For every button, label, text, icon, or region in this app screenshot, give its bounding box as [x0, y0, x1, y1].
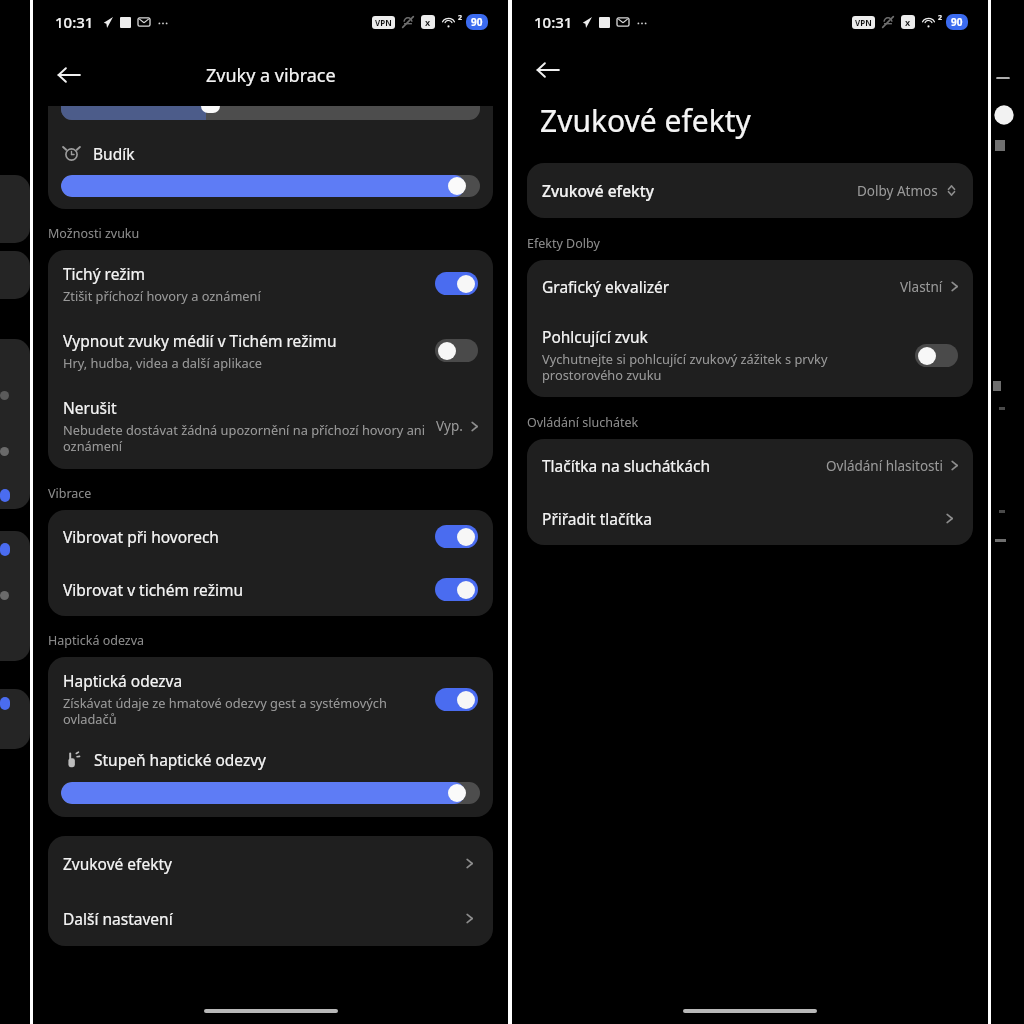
- staticText: Grafický ekvalizér: [542, 276, 900, 297]
- button[interactable]: Switch on: [435, 272, 478, 295]
- staticText: Pohlcující zvuk: [542, 326, 648, 347]
- staticText: VPN: [375, 17, 392, 28]
- staticText: x: [905, 16, 911, 28]
- button[interactable]: Nerušit: [48, 384, 493, 469]
- staticText: 10:31: [534, 12, 573, 32]
- staticText: 2: [938, 13, 943, 23]
- staticText: VPN: [855, 17, 872, 28]
- button[interactable]: Haptická odezva: [48, 657, 493, 741]
- staticText: Nerušit: [63, 397, 117, 418]
- staticText: 90: [951, 15, 963, 29]
- staticText: Ovládání sluchátek: [527, 414, 639, 431]
- staticText: Ovládání hlasitosti: [826, 457, 943, 475]
- button[interactable]: Pohlcující zvuk: [527, 313, 973, 397]
- staticText: 2: [458, 13, 463, 23]
- staticText: Ztišit příchozí hovory a oznámení: [63, 287, 261, 304]
- staticText: Vibrovat při hovorech: [63, 526, 219, 547]
- staticText: Dolby Atmos: [857, 182, 938, 200]
- button[interactable]: Přiřadit tlačítka: [527, 492, 973, 545]
- staticText: Zvuky a vibrace: [206, 63, 336, 88]
- button[interactable]: Switch off: [435, 339, 478, 362]
- button[interactable]: Slider: [61, 175, 480, 197]
- staticText: Vibrovat v tichém režimu: [63, 579, 244, 600]
- button[interactable]: Switch off: [915, 344, 958, 367]
- button[interactable]: Slider: [61, 782, 480, 804]
- button[interactable]: Back: [47, 53, 91, 97]
- staticText: Možnosti zvuku: [48, 225, 140, 242]
- staticText: Haptická odezva: [48, 632, 145, 649]
- button[interactable]: Tlačítka na sluchátkách: [527, 439, 973, 492]
- button[interactable]: Grafický ekvalizér: [527, 260, 973, 313]
- staticText: Nebudete dostávat žádná upozornění na př…: [63, 421, 430, 455]
- staticText: x: [425, 16, 431, 28]
- button[interactable]: Zvukové efekty: [527, 163, 973, 218]
- staticText: Tlačítka na sluchátkách: [542, 455, 826, 476]
- staticText: Tichý režim: [63, 263, 146, 284]
- staticText: Další nastavení: [63, 908, 173, 929]
- staticText: Vychutnejte si pohlcující zvukový zážite…: [542, 350, 905, 384]
- staticText: Hry, hudba, videa a další aplikace: [63, 354, 263, 371]
- button[interactable]: Back: [526, 48, 570, 92]
- button[interactable]: Zvukové efekty: [48, 836, 493, 891]
- button[interactable]: Switch on: [435, 688, 478, 711]
- staticText: Budík: [93, 143, 135, 164]
- button[interactable]: Media volume: [61, 106, 480, 120]
- staticText: Zvukové efekty: [63, 853, 172, 874]
- staticText: 90: [471, 15, 483, 29]
- button[interactable]: Tichý režim: [48, 250, 493, 317]
- staticText: Vyp.: [436, 417, 463, 435]
- staticText: Přiřadit tlačítka: [542, 508, 653, 529]
- staticText: Stupeň haptické odezvy: [94, 749, 267, 770]
- button[interactable]: Další nastavení: [48, 891, 493, 946]
- staticText: Vibrace: [48, 485, 92, 502]
- staticText: Efekty Dolby: [527, 235, 600, 252]
- staticText: 10:31: [55, 12, 94, 32]
- staticText: Zvukové efekty: [540, 100, 751, 141]
- staticText: Získávat údaje ze hmatové odezvy gest a …: [63, 694, 427, 728]
- button[interactable]: Switch on: [435, 578, 478, 601]
- staticText: Zvukové efekty: [542, 180, 857, 201]
- button[interactable]: Vibrovat v tichém režimu: [48, 563, 493, 616]
- button[interactable]: Vibrovat při hovorech: [48, 510, 493, 563]
- staticText: Vlastní: [900, 278, 943, 296]
- button[interactable]: Switch on: [435, 525, 478, 548]
- button[interactable]: Vypnout zvuky médií v Tichém režimu: [48, 317, 493, 384]
- staticText: Vypnout zvuky médií v Tichém režimu: [63, 330, 337, 351]
- staticText: Haptická odezva: [63, 670, 183, 691]
